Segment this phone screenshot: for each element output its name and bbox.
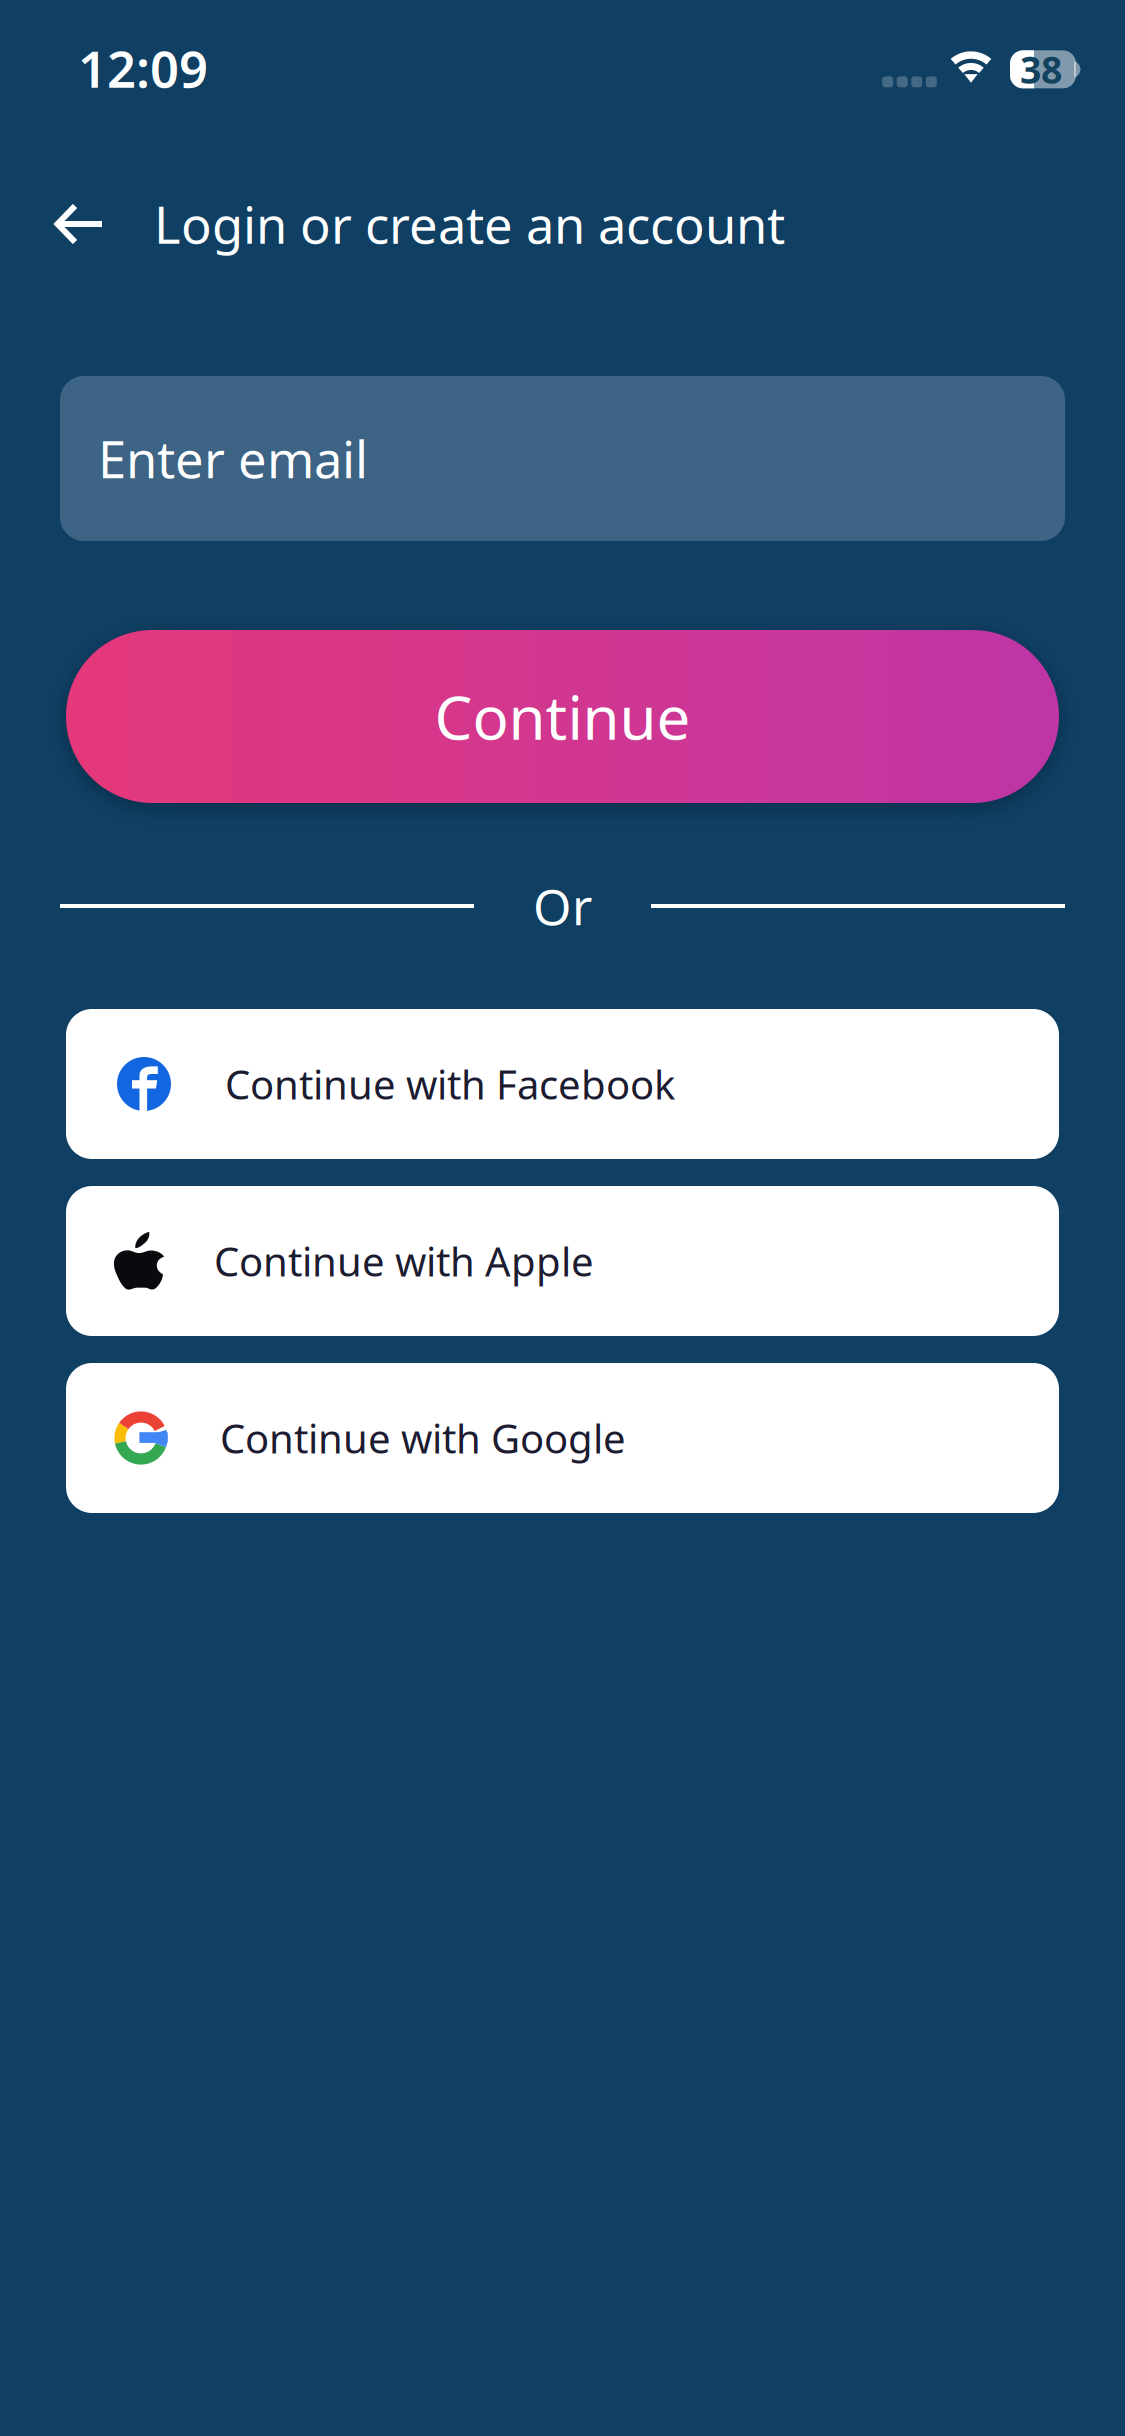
staticText: Continue with Google	[220, 1411, 626, 1464]
button[interactable]: Back	[42, 186, 118, 262]
button[interactable]: Continue with Google	[66, 1363, 1059, 1513]
staticText: 12:09	[78, 34, 208, 102]
staticText: Login or create an account	[154, 190, 785, 258]
button[interactable]: Continue with Apple	[66, 1186, 1059, 1336]
staticText: Continue with Facebook	[225, 1057, 675, 1110]
staticText: Continue	[434, 677, 690, 756]
staticText: 38	[1020, 45, 1062, 94]
button[interactable]: Enter email	[60, 376, 1065, 541]
button[interactable]: Continue with Facebook	[66, 1009, 1059, 1159]
staticText: Continue with Apple	[214, 1234, 594, 1287]
button[interactable]: Continue	[66, 630, 1059, 803]
staticText: Or	[533, 873, 592, 939]
staticText: Enter email	[98, 425, 368, 492]
